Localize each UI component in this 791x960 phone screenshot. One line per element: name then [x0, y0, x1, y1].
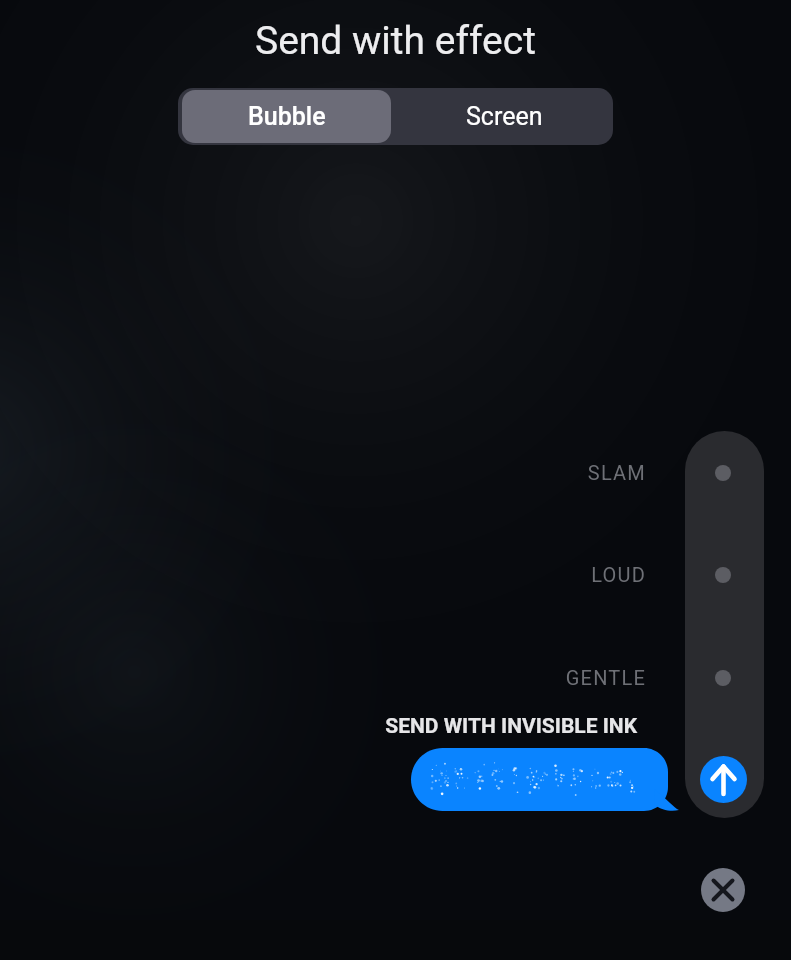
staticText: SLAM — [587, 461, 646, 484]
button[interactable]: SLAM — [383, 448, 767, 496]
staticText: Send with effect — [255, 18, 536, 64]
staticText: SEND WITH INVISIBLE INK — [385, 714, 637, 739]
button[interactable]: LOUD — [383, 550, 767, 598]
staticText: Screen — [466, 102, 543, 131]
button[interactable]: Close — [701, 868, 745, 912]
button[interactable]: Bubble — [182, 90, 391, 143]
button[interactable]: SEND WITH INVISIBLE INK — [297, 710, 637, 742]
staticText: LOUD — [591, 563, 646, 586]
button[interactable]: Screen — [395, 88, 613, 145]
staticText: GENTLE — [565, 666, 646, 689]
staticText: Bubble — [248, 102, 326, 131]
button[interactable]: Send — [700, 756, 747, 803]
button[interactable]: GENTLE — [383, 653, 767, 701]
